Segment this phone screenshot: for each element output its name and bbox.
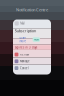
staticText: Notification Centre	[16, 7, 48, 12]
button[interactable]: Renew	[13, 51, 51, 58]
button[interactable]: Manage	[13, 58, 51, 65]
staticText: New	[34, 38, 39, 41]
staticText: Cancel	[20, 66, 29, 70]
button[interactable]: Cancel	[13, 65, 51, 71]
staticText: Subscription	[15, 28, 36, 33]
staticText: Mail	[20, 22, 25, 25]
staticText: Learn more	[19, 36, 26, 43]
staticText: Renew	[20, 53, 29, 56]
staticText: Expires in 3 days	[15, 46, 37, 49]
staticText: Manage	[20, 59, 30, 63]
